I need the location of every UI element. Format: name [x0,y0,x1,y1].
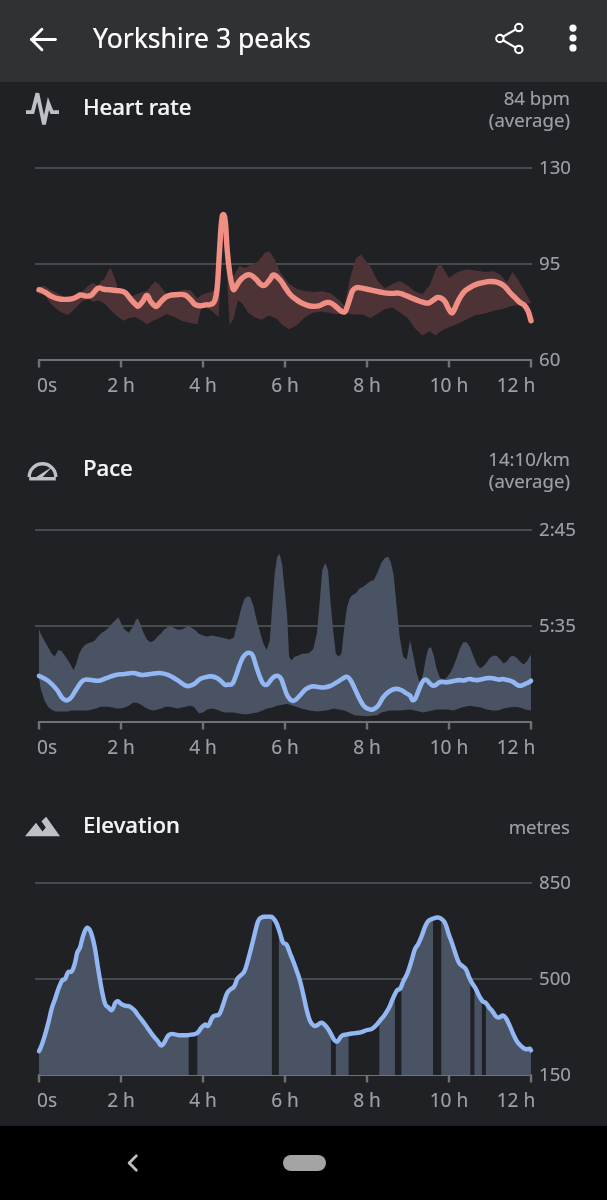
staticText: 84 bpm [296,85,570,110]
staticText: (average) [296,468,570,493]
staticText: 0s [7,372,87,398]
button[interactable]: Home [283,1155,326,1171]
staticText: Pace [83,452,133,482]
button[interactable]: Share [476,5,543,72]
staticText: 8 h [327,372,407,398]
staticText: 12 h [476,734,556,760]
staticText: 2 h [81,372,161,398]
button[interactable]: Back [11,0,76,80]
staticText: 4 h [163,372,243,398]
staticText: 12 h [476,1087,556,1113]
staticText: 10 h [409,372,489,398]
staticText: Elevation [83,809,180,839]
button[interactable]: More options [539,4,606,71]
staticText: 6 h [245,372,325,398]
staticText: 4 h [163,1087,243,1113]
staticText: 0s [7,1087,87,1113]
staticText: 8 h [327,1087,407,1113]
staticText: 2:45 [539,516,576,541]
staticText: metres [296,814,570,839]
staticText: Yorkshire 3 peaks [93,20,311,56]
staticText: 10 h [409,734,489,760]
staticText: 60 [539,346,561,371]
staticText: 4 h [163,734,243,760]
staticText: (average) [296,107,570,132]
staticText: 8 h [327,734,407,760]
staticText: 2 h [81,734,161,760]
staticText: 850 [539,869,571,894]
staticText: 95 [539,250,561,275]
staticText: 0s [7,734,87,760]
staticText: 130 [539,154,571,179]
staticText: 5:35 [539,612,576,637]
button[interactable]: Back [113,1143,153,1183]
staticText: 14:10/km [296,446,570,471]
staticText: 500 [539,965,571,990]
staticText: Heart rate [83,91,192,121]
staticText: 6 h [245,1087,325,1113]
staticText: 10 h [409,1087,489,1113]
staticText: 2 h [81,1087,161,1113]
staticText: 150 [539,1061,571,1086]
staticText: 12 h [476,372,556,398]
staticText: 6 h [245,734,325,760]
